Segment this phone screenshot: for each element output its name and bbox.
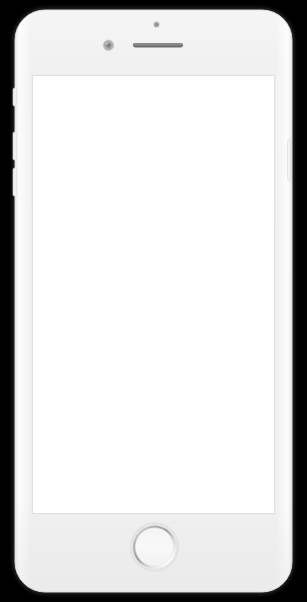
other: Phone device mockup with blank white scr… <box>0 0 307 602</box>
